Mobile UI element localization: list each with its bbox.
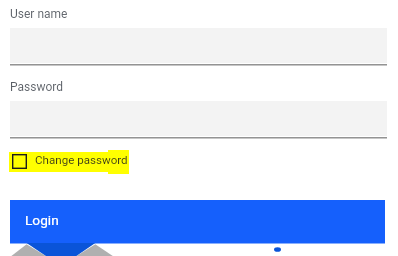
staticText: Login [25, 212, 59, 228]
button[interactable]: Password [10, 101, 387, 139]
button[interactable]: Change password [9, 152, 129, 172]
button[interactable]: User name [10, 28, 387, 66]
staticText: Password [10, 80, 64, 94]
staticText: Change password [35, 153, 128, 167]
button[interactable]: Login [10, 200, 385, 243]
staticText: User name [10, 7, 68, 21]
